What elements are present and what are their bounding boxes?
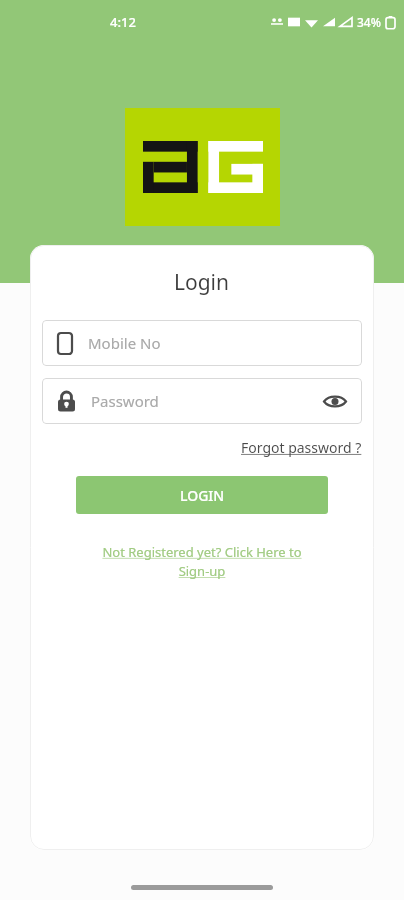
staticText: 34% bbox=[357, 14, 381, 30]
button[interactable]: LOGIN bbox=[76, 476, 328, 514]
button[interactable]: Show password bbox=[322, 388, 348, 414]
staticText: Password bbox=[91, 391, 159, 411]
staticText: Not Registered yet? Click Here to Sign-u… bbox=[87, 543, 317, 580]
staticText: LOGIN bbox=[180, 486, 225, 505]
staticText: Forgot password ? bbox=[241, 438, 362, 457]
button[interactable]: Password bbox=[42, 378, 362, 424]
button[interactable]: Forgot password ? bbox=[229, 432, 374, 463]
staticText: Login bbox=[174, 268, 230, 297]
button[interactable]: Not Registered yet? Click Here to Sign-u… bbox=[87, 543, 317, 580]
staticText: Mobile No bbox=[88, 333, 161, 353]
button[interactable]: Mobile No bbox=[42, 320, 362, 366]
staticText: 4:12 bbox=[110, 13, 136, 31]
